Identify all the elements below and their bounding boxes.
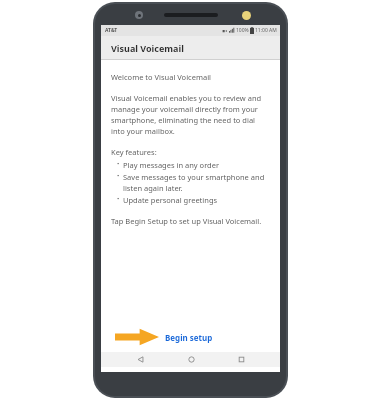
staticText: • (117, 195, 120, 203)
other: Pointer arrow (115, 328, 159, 346)
staticText: Play messages in any order (123, 160, 220, 170)
staticText: Welcome to Visual Voicemail (111, 72, 212, 82)
button[interactable]: Pointer arrow (115, 328, 213, 346)
staticText: • (117, 160, 120, 168)
button[interactable]: Back (129, 352, 151, 367)
staticText: Visual Voicemail (111, 42, 184, 54)
staticText: Key features: (111, 147, 157, 157)
staticText: Update personal greetings (123, 195, 218, 205)
button[interactable]: Recents (230, 352, 252, 367)
staticText: Visual Voicemail enables you to review a… (111, 93, 270, 136)
staticText: • (117, 172, 120, 180)
staticText: 11:00 AM (255, 27, 277, 34)
button[interactable]: Home (180, 352, 202, 367)
staticText: Save messages to your smartphone and lis… (123, 172, 270, 193)
staticText: Tap Begin Setup to set up Visual Voicema… (111, 216, 262, 226)
staticText: 100% (236, 27, 249, 34)
staticText: Begin setup (165, 332, 213, 343)
staticText: AT&T (105, 27, 118, 34)
